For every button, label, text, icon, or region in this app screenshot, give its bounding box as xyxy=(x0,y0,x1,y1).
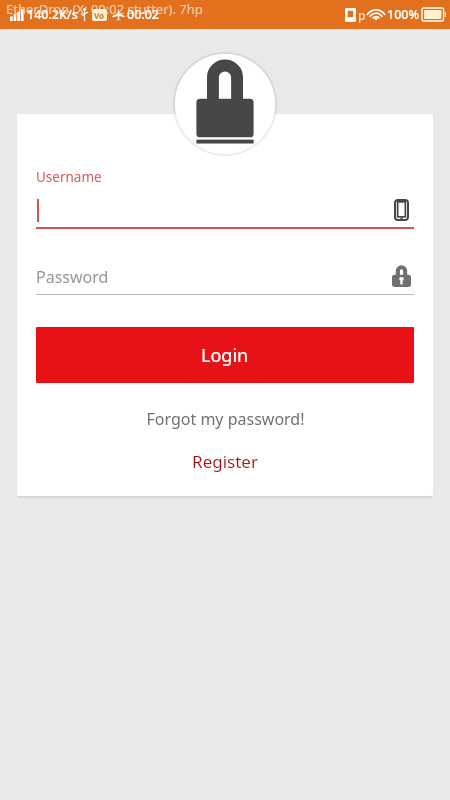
staticText: Register xyxy=(192,450,258,473)
button[interactable]: Password xyxy=(36,260,414,294)
staticText: Password xyxy=(36,266,388,288)
staticText: Forgot my password! xyxy=(146,408,305,430)
staticText: Vo xyxy=(94,10,105,21)
button[interactable]: Login xyxy=(36,327,414,383)
staticText: 100% xyxy=(387,6,420,23)
button[interactable]: Register xyxy=(36,445,414,478)
button[interactable]: Forgot my password! xyxy=(36,403,414,435)
staticText: 00:02 xyxy=(127,6,160,23)
button[interactable]: Use phone number xyxy=(36,193,414,227)
staticText: 140.2K/s xyxy=(27,6,78,23)
staticText: Login xyxy=(201,343,249,368)
other: Use phone number xyxy=(388,197,414,223)
staticText: Username xyxy=(36,168,102,186)
staticText: EtherDrop (X: 00:02 stutter). 7hp xyxy=(6,0,203,18)
other: Password visibility xyxy=(388,264,414,290)
staticText: p xyxy=(358,7,366,23)
